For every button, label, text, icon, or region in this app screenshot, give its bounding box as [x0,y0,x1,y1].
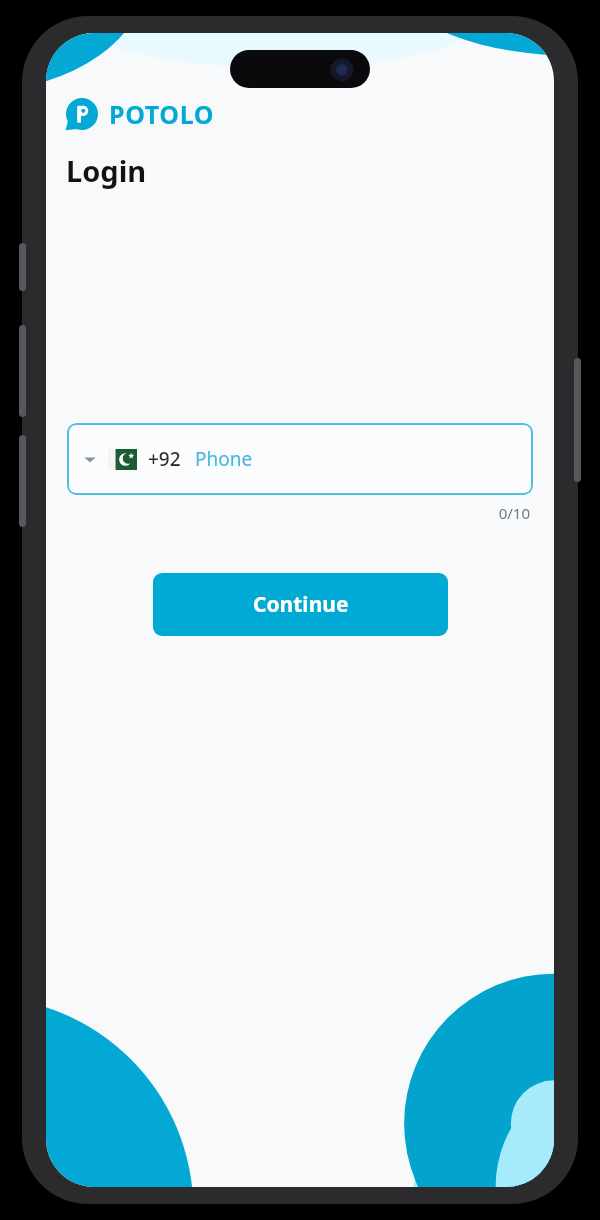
other: Potolo logo [66,98,98,130]
staticText: +92 [148,446,181,472]
button[interactable]: Select country code [67,423,533,495]
button[interactable]: Potolo logo [66,97,215,131]
other: Select country code [83,452,97,466]
staticText: Login [66,151,147,190]
staticText: Phone [195,446,253,472]
staticText: Continue [253,590,349,619]
staticText: 0/10 [46,503,530,523]
button[interactable]: Continue [153,573,448,636]
staticText: POTOLO [109,97,215,131]
